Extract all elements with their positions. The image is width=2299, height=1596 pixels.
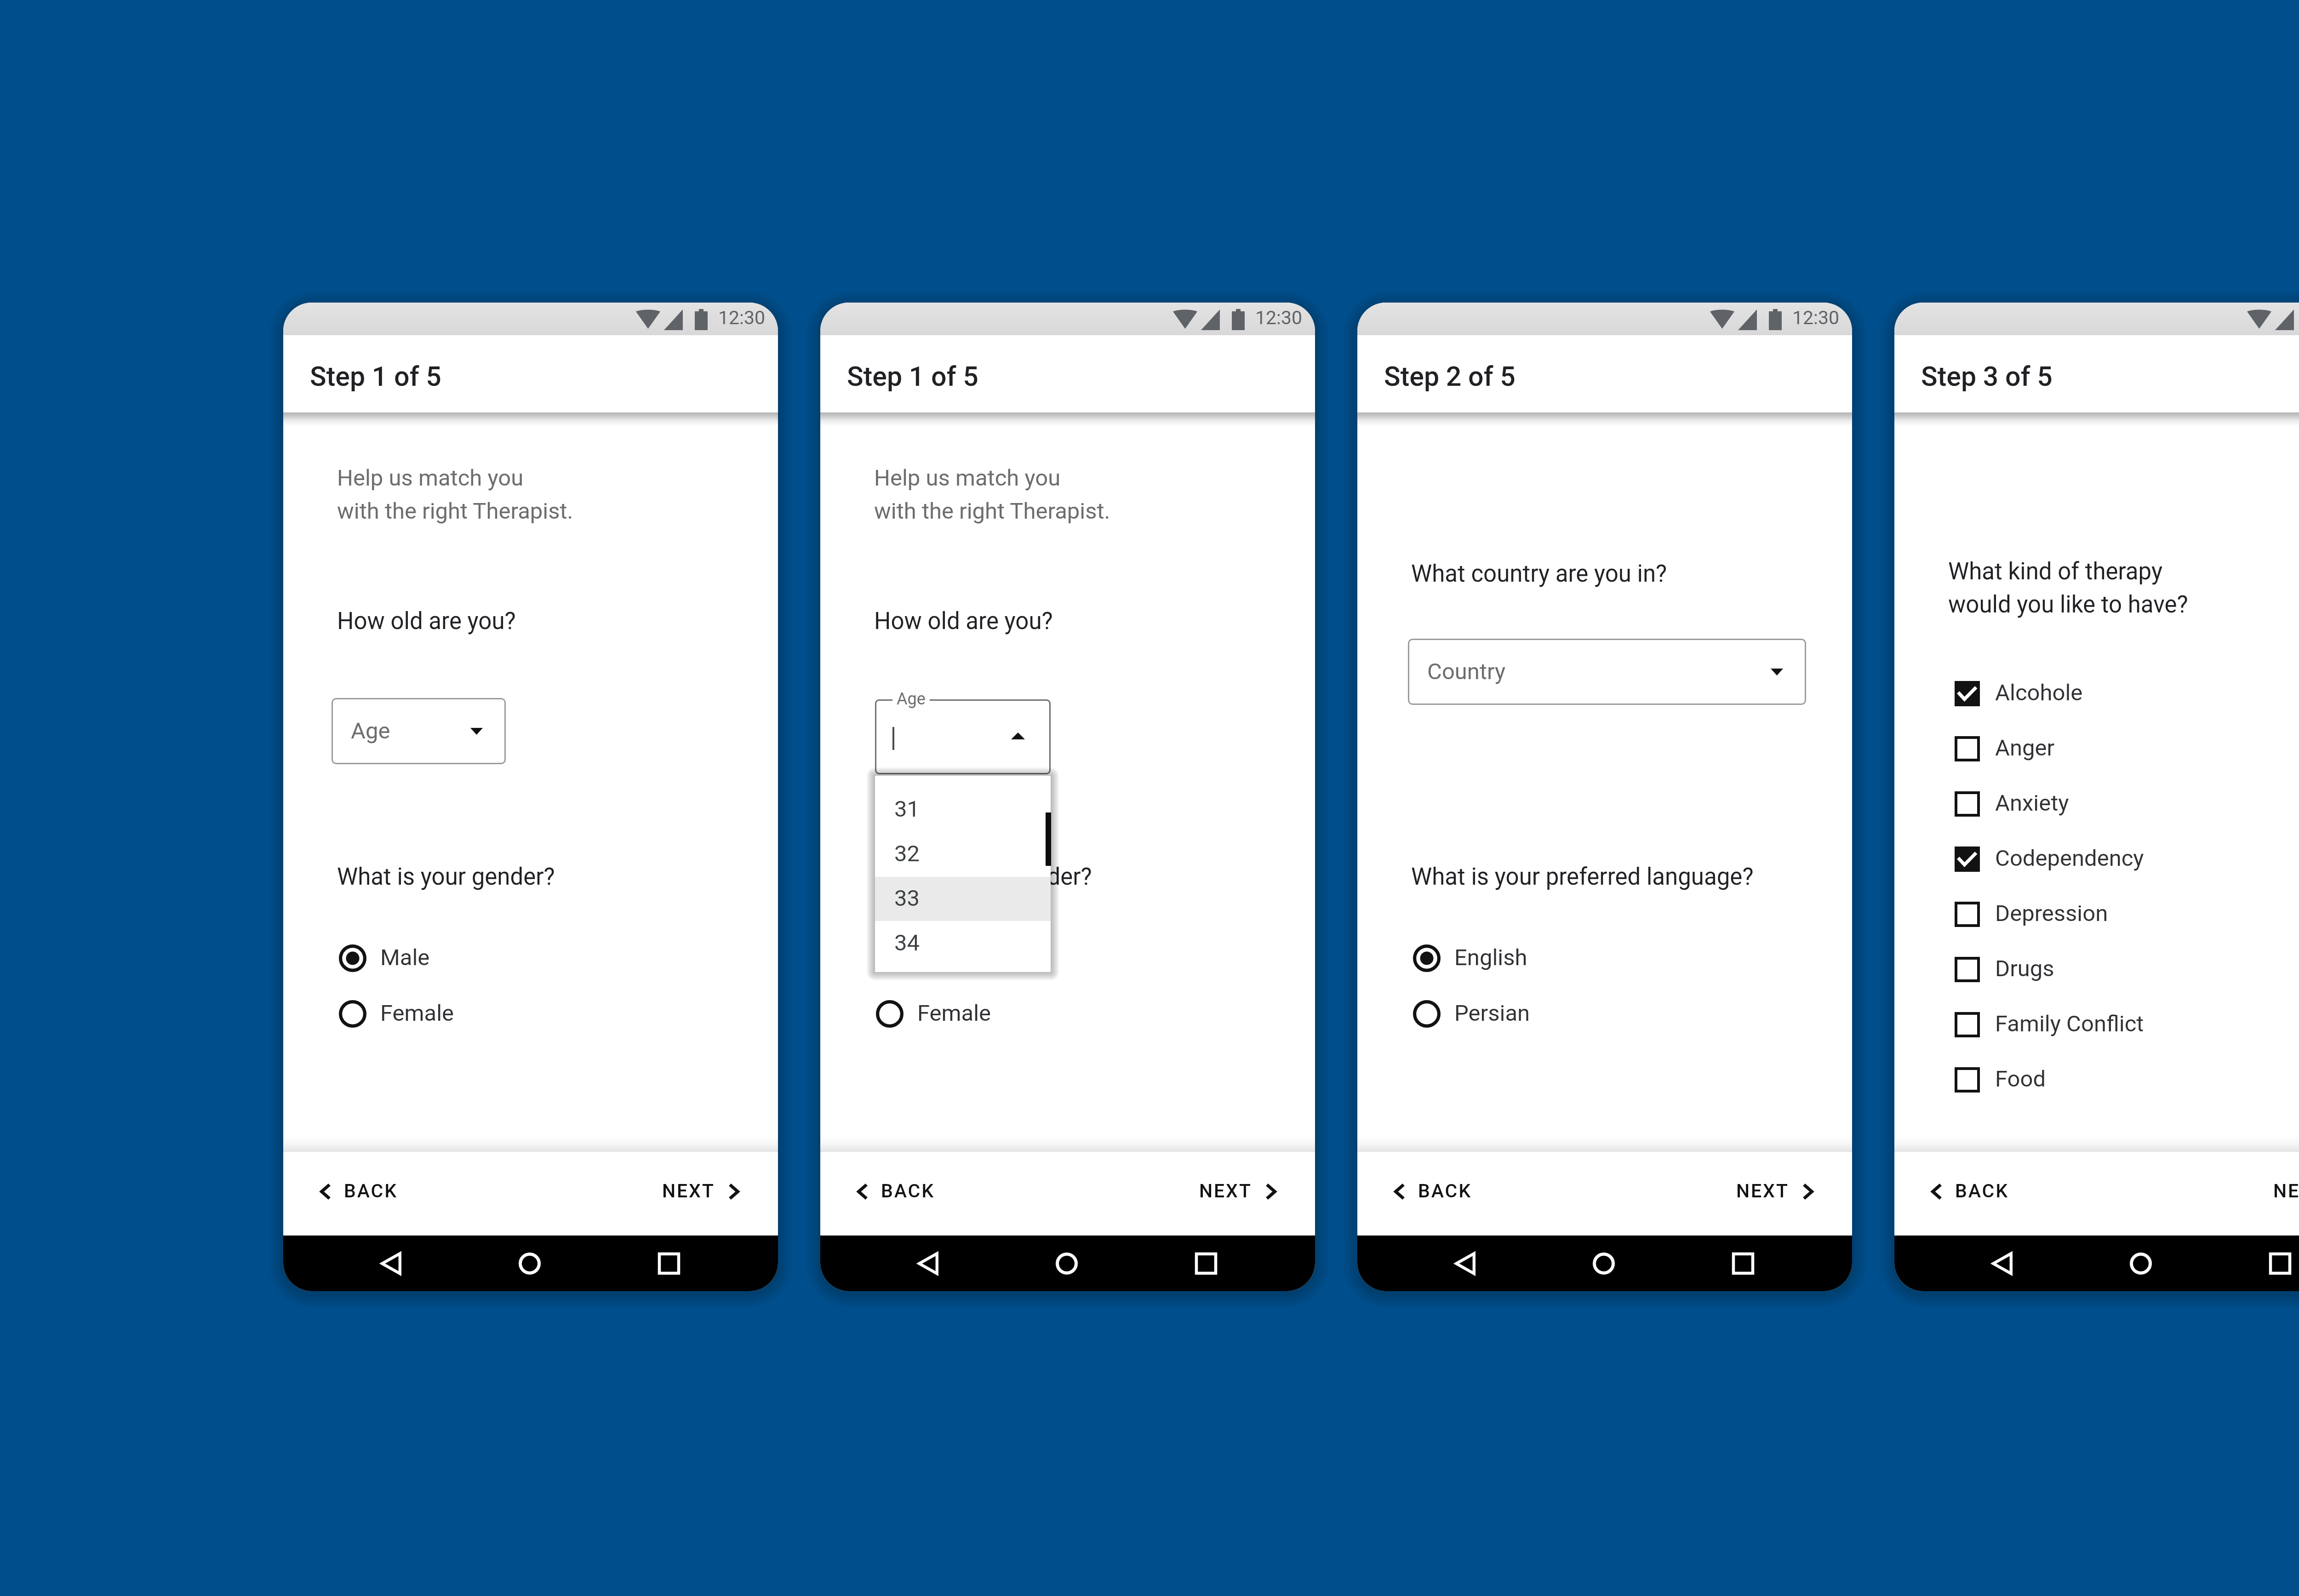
button[interactable]: Depression xyxy=(1955,889,2108,939)
staticText: NEXT xyxy=(2273,1180,2299,1202)
staticText: NEXT xyxy=(662,1180,715,1202)
button[interactable]: Back xyxy=(900,1236,955,1291)
staticText: 12:30 xyxy=(1255,307,1303,329)
staticText: Family Conflict xyxy=(1995,1011,2144,1037)
staticText: NEXT xyxy=(1199,1180,1252,1202)
staticText: How old are you? xyxy=(874,607,1053,635)
button[interactable]: NEXT xyxy=(662,1177,739,1206)
staticText: Female xyxy=(917,1000,991,1026)
button[interactable]: NEXT xyxy=(1736,1177,1813,1206)
staticText: What is your preferred language? xyxy=(1411,863,1754,891)
staticText: Male xyxy=(380,944,430,971)
staticText: BACK xyxy=(1418,1180,1472,1202)
staticText: 34 xyxy=(894,930,920,956)
button[interactable]: 32 xyxy=(875,832,1051,876)
staticText: Alcohole xyxy=(1995,680,2083,706)
staticText: What country are you in? xyxy=(1411,560,1667,588)
staticText: BACK xyxy=(344,1180,398,1202)
button[interactable]: Recents xyxy=(1716,1236,1771,1291)
button[interactable]: NEXT xyxy=(1199,1177,1276,1206)
staticText: 12:30 xyxy=(718,307,766,329)
button[interactable]: 33 xyxy=(875,877,1051,921)
staticText: What kind of therapy would you like to h… xyxy=(1948,558,2188,618)
button[interactable]: Female xyxy=(876,989,991,1039)
button[interactable]: Alcohole xyxy=(1955,668,2083,719)
button[interactable]: 34 xyxy=(875,921,1051,966)
button[interactable]: Age xyxy=(332,698,506,764)
staticText: 32 xyxy=(894,841,920,867)
staticText: Depression xyxy=(1995,900,2108,927)
staticText: Anxiety xyxy=(1995,790,2069,816)
button[interactable]: Back xyxy=(1437,1236,1493,1291)
button[interactable]: BACK xyxy=(857,1177,935,1206)
button[interactable]: Back xyxy=(363,1236,418,1291)
button[interactable]: Home xyxy=(502,1236,557,1291)
staticText: Codependency xyxy=(1995,845,2144,871)
button[interactable]: English xyxy=(1413,933,1527,984)
staticText: 31 xyxy=(894,796,920,822)
staticText: BACK xyxy=(881,1180,935,1202)
button[interactable]: Family Conflict xyxy=(1955,999,2144,1050)
button[interactable]: Persian xyxy=(1413,989,1530,1039)
staticText: Drugs xyxy=(1995,955,2054,982)
button[interactable]: Anger xyxy=(1955,723,2055,774)
staticText: Step 3 of 5 xyxy=(1921,360,2053,392)
staticText: Step 1 of 5 xyxy=(310,360,441,392)
button[interactable]: Male xyxy=(339,933,430,984)
staticText: What is your gender? xyxy=(874,863,1092,891)
button[interactable]: Food xyxy=(1955,1054,2046,1105)
button[interactable]: NEXT xyxy=(2273,1177,2299,1206)
staticText: Female xyxy=(380,1000,454,1026)
staticText: What is your gender? xyxy=(337,863,555,891)
staticText: Step 2 of 5 xyxy=(1384,360,1516,392)
button[interactable]: BACK xyxy=(320,1177,398,1206)
button[interactable]: Recents xyxy=(1178,1236,1234,1291)
button[interactable]: Recents xyxy=(641,1236,697,1291)
button[interactable]: Home xyxy=(1039,1236,1094,1291)
button[interactable]: Country xyxy=(1408,639,1806,705)
staticText: 12:30 xyxy=(1792,307,1840,329)
staticText: Food xyxy=(1995,1066,2046,1092)
staticText: Help us match you with the right Therapi… xyxy=(874,465,1110,524)
staticText: Age xyxy=(351,718,390,744)
staticText: BACK xyxy=(1955,1180,2009,1202)
button[interactable]: Home xyxy=(1576,1236,1631,1291)
button[interactable]: Home xyxy=(2113,1236,2168,1291)
staticText: Help us match you with the right Therapi… xyxy=(337,465,573,524)
staticText: Country xyxy=(1427,658,1506,685)
staticText: 33 xyxy=(894,885,920,911)
button[interactable]: Codependency xyxy=(1955,834,2144,884)
button[interactable]: Recents xyxy=(2253,1236,2299,1291)
staticText: Persian xyxy=(1454,1000,1530,1026)
button[interactable]: BACK xyxy=(1931,1177,2009,1206)
button[interactable] xyxy=(875,699,1051,774)
button[interactable]: BACK xyxy=(1394,1177,1472,1206)
button[interactable]: Drugs xyxy=(1955,944,2054,995)
staticText: Age xyxy=(897,689,926,709)
staticText: NEXT xyxy=(1736,1180,1789,1202)
staticText: English xyxy=(1454,944,1527,971)
button[interactable]: 31 xyxy=(875,788,1051,832)
button[interactable]: Back xyxy=(1974,1236,2030,1291)
button[interactable]: Female xyxy=(339,989,454,1039)
staticText: How old are you? xyxy=(337,607,516,635)
staticText: Step 1 of 5 xyxy=(847,360,978,392)
button[interactable]: Anxiety xyxy=(1955,778,2069,829)
staticText: Anger xyxy=(1995,735,2055,761)
